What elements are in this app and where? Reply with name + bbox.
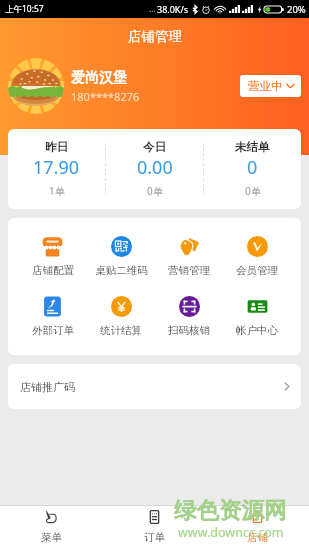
staticText: 0单 bbox=[147, 184, 163, 198]
staticText: 外部订单 bbox=[32, 324, 74, 337]
staticText: 0.00 bbox=[137, 155, 173, 180]
staticText: 帐户中心 bbox=[236, 324, 278, 337]
button[interactable]: 店铺 bbox=[206, 506, 309, 550]
staticText: 180****8276 bbox=[71, 89, 140, 104]
button[interactable]: 未结单 bbox=[204, 129, 301, 209]
button[interactable]: 店铺配置 bbox=[18, 236, 87, 277]
staticText: 会员管理 bbox=[236, 264, 278, 277]
staticText: 1单 bbox=[49, 184, 65, 198]
staticText: 0 bbox=[247, 155, 258, 180]
staticText: 菜单 bbox=[41, 531, 62, 544]
staticText: 店铺 bbox=[247, 531, 268, 544]
staticText: www.downcc.com bbox=[178, 524, 284, 541]
staticText: 20% bbox=[287, 3, 306, 16]
staticText: 爱尚汉堡 bbox=[71, 69, 127, 87]
staticText: 昨日 bbox=[45, 140, 68, 154]
button[interactable]: 昨日 bbox=[8, 129, 105, 209]
button[interactable]: 菜单 bbox=[0, 506, 103, 550]
staticText: 店铺推广码 bbox=[20, 380, 75, 394]
staticText: 0单 bbox=[245, 184, 261, 198]
staticText: 店铺配置 bbox=[32, 264, 74, 277]
button[interactable]: 帐户中心 bbox=[223, 296, 291, 337]
staticText: 扫码核销 bbox=[168, 324, 210, 337]
button[interactable]: 店铺推广码 bbox=[8, 364, 301, 409]
button[interactable]: 统计结算 bbox=[87, 296, 155, 337]
button[interactable]: 营业中 bbox=[240, 75, 301, 97]
staticText: 营业中 bbox=[248, 79, 283, 93]
staticText: 订单 bbox=[144, 531, 165, 544]
staticText: 统计结算 bbox=[100, 324, 142, 337]
staticText: 38.0K/s bbox=[157, 3, 189, 15]
button[interactable]: 订单 bbox=[103, 506, 206, 550]
staticText: 上午10:57 bbox=[5, 3, 44, 15]
button[interactable]: 外部订单 bbox=[18, 296, 87, 337]
button[interactable]: 会员管理 bbox=[223, 236, 291, 277]
staticText: 绿色资源网 bbox=[174, 496, 287, 524]
button[interactable]: 扫码核销 bbox=[155, 296, 223, 337]
button[interactable]: 今日 bbox=[106, 129, 203, 209]
staticText: 桌贴二维码 bbox=[95, 264, 148, 277]
button[interactable]: 桌贴二维码 bbox=[87, 236, 155, 277]
button[interactable]: 营销管理 bbox=[155, 236, 223, 277]
staticText: 今日 bbox=[143, 140, 166, 154]
staticText: 营销管理 bbox=[168, 264, 210, 277]
staticText: 店铺管理 bbox=[128, 28, 182, 45]
staticText: ... bbox=[149, 3, 156, 15]
staticText: 17.90 bbox=[33, 155, 80, 180]
staticText: 未结单 bbox=[235, 140, 270, 154]
